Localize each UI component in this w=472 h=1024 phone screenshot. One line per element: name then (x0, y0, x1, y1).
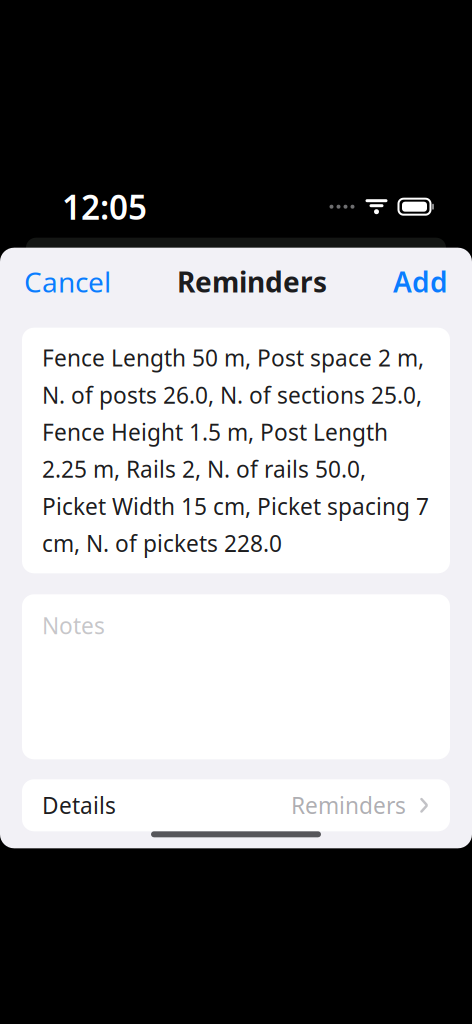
button[interactable]: Cancel (20, 253, 115, 310)
staticText: Cancel (24, 263, 111, 300)
staticText: Details (42, 790, 116, 820)
button[interactable]: Details (22, 779, 450, 831)
button[interactable]: Fence Length 50 m, Post space 2 m, N. of… (22, 328, 450, 573)
button[interactable]: Notes (22, 594, 450, 759)
staticText: Fence Length 50 m, Post space 2 m, N. of… (42, 343, 429, 558)
staticText: Notes (42, 610, 105, 640)
staticText: Reminders (177, 263, 327, 300)
staticText: 12:05 (62, 185, 147, 229)
staticText: Add (393, 263, 448, 300)
staticText: Reminders (291, 790, 406, 820)
button[interactable]: Add (389, 253, 452, 310)
